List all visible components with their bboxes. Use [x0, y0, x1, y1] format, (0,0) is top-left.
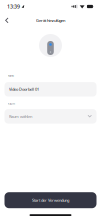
button[interactable]: Start der Verwendung — [4, 192, 96, 208]
staticText: 13:39 — [7, 3, 20, 10]
staticText: Start der Verwendung — [32, 197, 69, 203]
staticText: Raum wählen — [9, 114, 32, 119]
staticText: Video Doorbell 01 — [9, 87, 39, 92]
button[interactable]: Video Doorbell 01 — [4, 82, 96, 96]
button[interactable]: Raum wählen — [4, 109, 96, 124]
staticText: Gerät hinzufügen — [36, 18, 65, 23]
staticText: Name — [7, 74, 14, 77]
staticText: Raum — [7, 102, 14, 105]
button[interactable]: Back — [1, 14, 13, 26]
